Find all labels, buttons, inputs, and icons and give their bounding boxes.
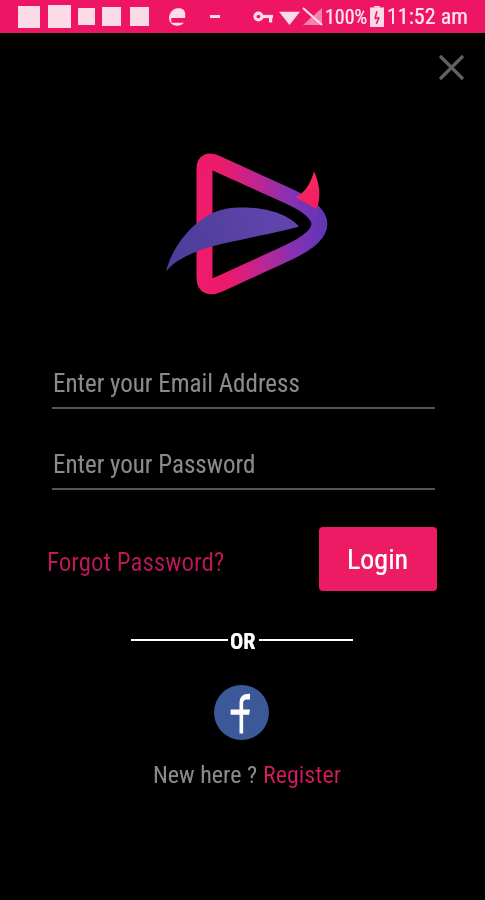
button[interactable]: Login xyxy=(319,527,437,591)
staticText: 100% xyxy=(325,5,368,28)
staticText: Login xyxy=(347,543,409,576)
button[interactable]: Forgot Password? xyxy=(47,548,225,577)
staticText: OR xyxy=(230,629,256,655)
button[interactable]: Continue with Facebook xyxy=(214,685,269,740)
staticText: Enter your Email Address xyxy=(53,369,300,398)
button[interactable]: Register xyxy=(263,761,341,789)
staticText: Forgot Password? xyxy=(47,548,225,577)
staticText: Enter your Password xyxy=(53,450,256,479)
staticText: 11:52 am xyxy=(387,4,468,30)
staticText: New here ? xyxy=(153,761,263,789)
button[interactable]: Close xyxy=(429,45,473,89)
staticText: Register xyxy=(263,761,341,789)
